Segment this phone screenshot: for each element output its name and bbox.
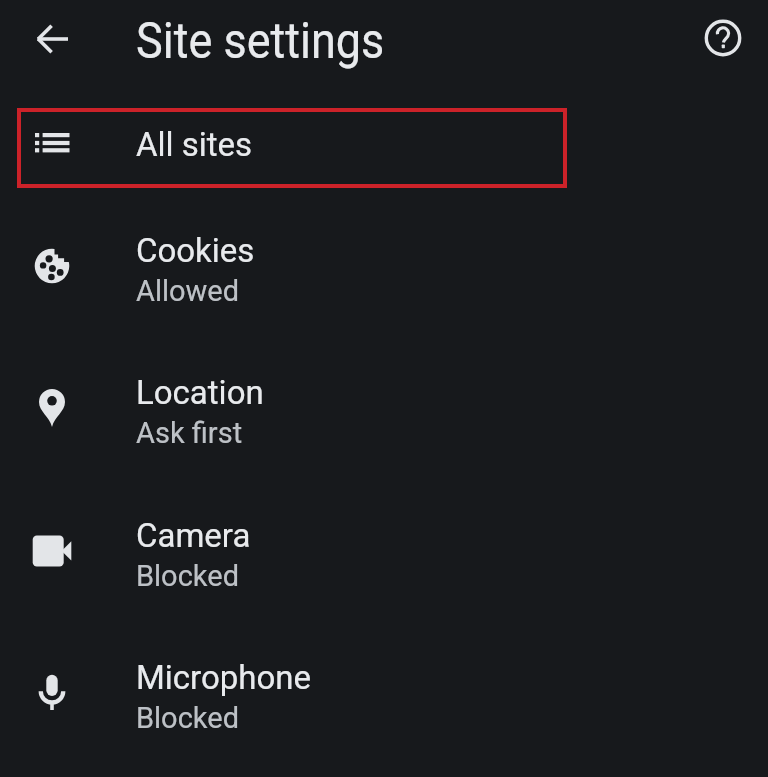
- button[interactable]: Microphone: [0, 630, 768, 772]
- staticText: All sites: [136, 124, 253, 164]
- staticText: Camera: [136, 515, 251, 555]
- button[interactable]: Camera: [0, 488, 768, 630]
- button[interactable]: Help: [699, 14, 747, 62]
- staticText: Cookies: [136, 230, 255, 270]
- staticText: Blocked: [136, 700, 239, 735]
- button[interactable]: Cookies: [0, 203, 768, 345]
- staticText: Allowed: [136, 273, 240, 308]
- staticText: Site settings: [136, 12, 385, 70]
- button[interactable]: All sites: [0, 97, 768, 200]
- staticText: Location: [136, 372, 264, 412]
- staticText: Microphone: [136, 657, 312, 697]
- staticText: Blocked: [136, 558, 239, 593]
- button[interactable]: Back: [28, 15, 76, 63]
- staticText: Ask first: [136, 415, 243, 450]
- button[interactable]: Location: [0, 345, 768, 487]
